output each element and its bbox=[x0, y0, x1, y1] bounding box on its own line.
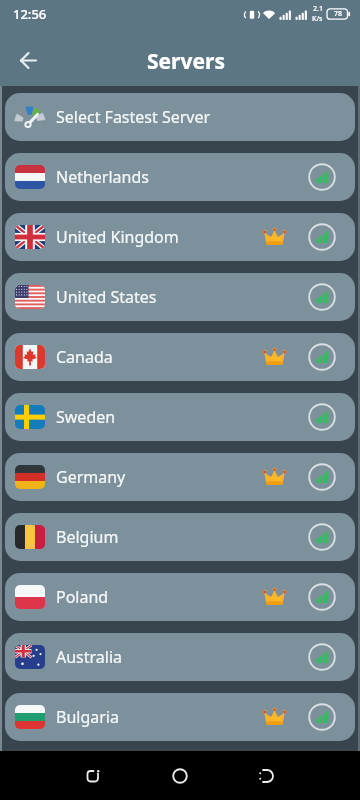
staticText: Select Fastest Server bbox=[56, 106, 211, 128]
staticText: Servers bbox=[147, 47, 225, 76]
button[interactable]: Netherlands bbox=[5, 153, 355, 201]
button[interactable] bbox=[12, 44, 44, 76]
staticText: Australia bbox=[56, 646, 123, 668]
button[interactable]: Germany bbox=[5, 453, 355, 501]
button[interactable] bbox=[237, 751, 297, 800]
button[interactable] bbox=[150, 751, 210, 800]
button[interactable]: Poland bbox=[5, 573, 355, 621]
button[interactable]: Canada bbox=[5, 333, 355, 381]
button[interactable]: United Kingdom bbox=[5, 213, 355, 261]
staticText: 12:56 bbox=[13, 5, 47, 23]
staticText: Belgium bbox=[56, 526, 119, 548]
button[interactable]: Belgium bbox=[5, 513, 355, 561]
staticText: K/s bbox=[312, 14, 323, 24]
staticText: United Kingdom bbox=[56, 226, 179, 248]
staticText: United States bbox=[56, 286, 157, 308]
staticText: Poland bbox=[56, 586, 109, 608]
staticText: Netherlands bbox=[56, 166, 149, 188]
button[interactable] bbox=[63, 751, 123, 800]
button[interactable]: United States bbox=[5, 273, 355, 321]
button[interactable]: Sweden bbox=[5, 393, 355, 441]
button[interactable]: Australia bbox=[5, 633, 355, 681]
staticText: 2.1 bbox=[313, 4, 323, 14]
staticText: Germany bbox=[56, 466, 126, 488]
staticText: Canada bbox=[56, 346, 113, 368]
staticText: Bulgaria bbox=[56, 706, 119, 728]
button[interactable]: Select Fastest Server bbox=[5, 93, 355, 141]
button[interactable]: Bulgaria bbox=[5, 693, 355, 741]
staticText: Sweden bbox=[56, 406, 116, 428]
staticText: 78 bbox=[334, 9, 343, 19]
